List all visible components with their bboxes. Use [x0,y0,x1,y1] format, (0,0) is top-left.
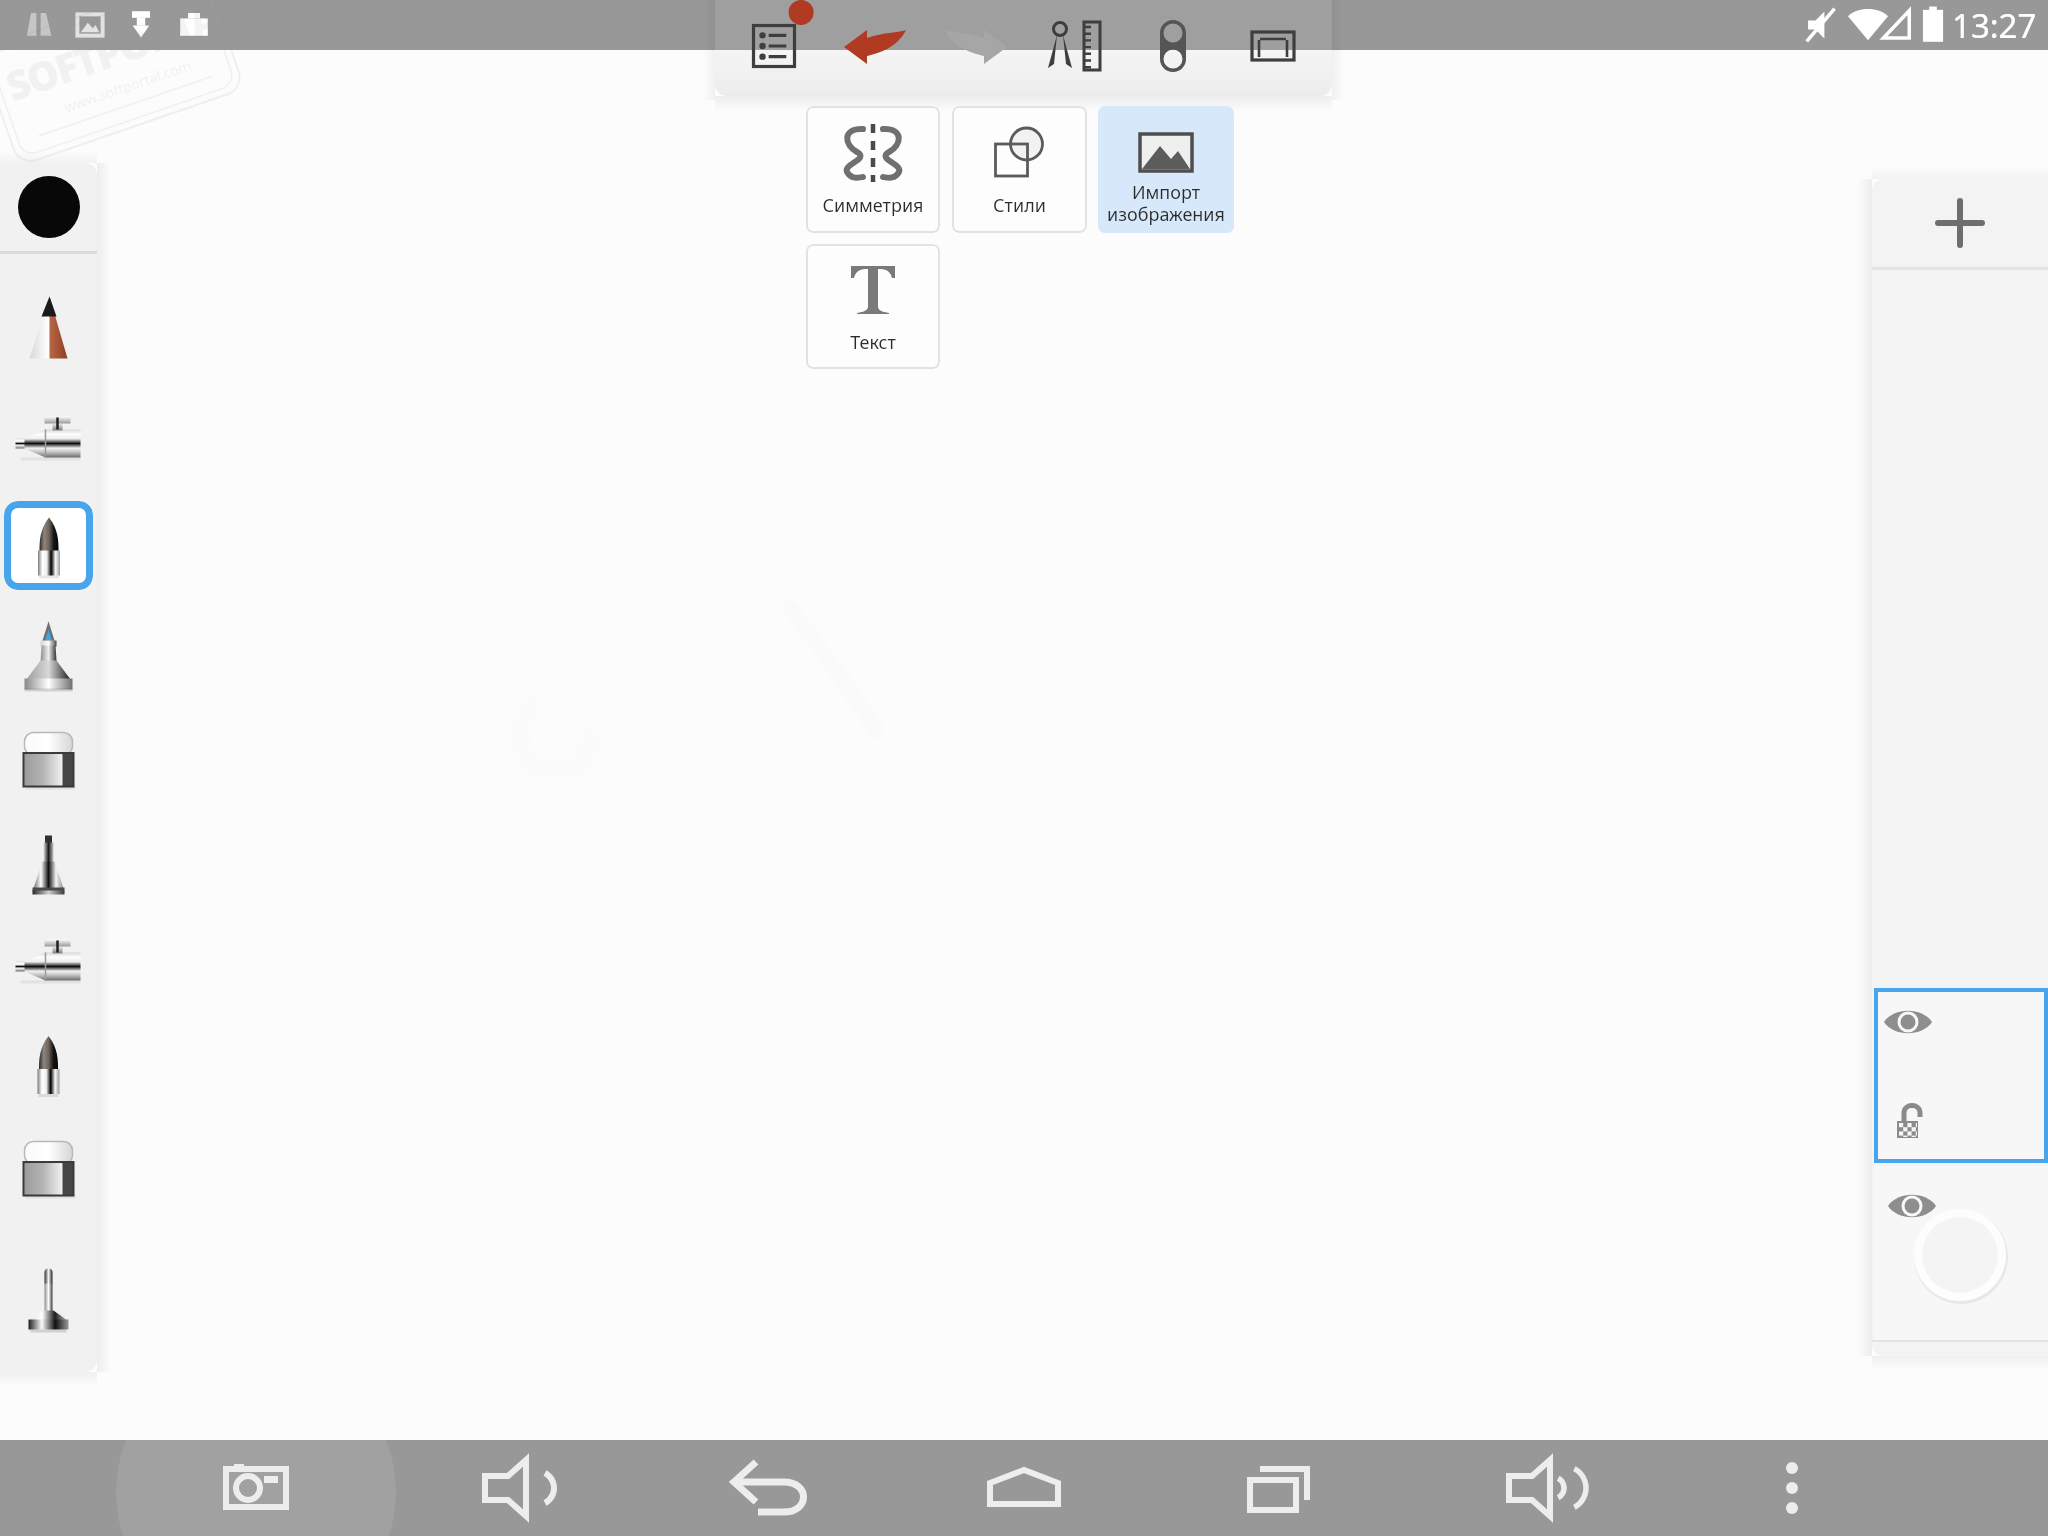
button[interactable]: Volume up [1408,1440,1664,1536]
staticText: www.softportal.com [62,55,194,116]
button[interactable]: Fullscreen [1224,0,1332,96]
button[interactable]: Brush pen tool (selected) [4,501,93,590]
staticText: 13:27 [1952,3,2037,48]
button[interactable]: Layer 2 options [1874,988,2048,1163]
button[interactable]: Block eraser tool [4,1124,93,1213]
button[interactable]: Layer 1 options [1874,1166,2048,1340]
button[interactable]: Pressure toggle [1124,0,1224,96]
staticText: Симметрия [806,193,940,218]
button[interactable]: Pencil tool [4,283,93,372]
staticText: Стили [952,193,1087,218]
button[interactable]: Redo [925,0,1026,96]
button[interactable]: More options [1664,1440,1920,1536]
button[interactable]: Симметрия [806,106,940,233]
button[interactable]: Текст [806,244,940,369]
button[interactable]: Импорт изображения [1098,106,1234,233]
button[interactable]: Current colour [0,163,97,251]
button[interactable]: Стили [952,106,1087,233]
button[interactable]: Blender tool [4,1256,93,1345]
button[interactable]: Add layer [1872,179,2048,267]
button[interactable]: Screenshot [128,1440,384,1536]
button[interactable]: Ink brush tool [4,1021,93,1110]
button[interactable]: Fine pen tool [4,820,93,909]
button[interactable]: Back [640,1440,896,1536]
button[interactable]: Home [896,1440,1152,1536]
button[interactable]: Undo [825,0,925,96]
button[interactable]: Spray tool [4,920,93,1009]
staticText: SOFTPORTAL [0,0,245,112]
button[interactable]: Compass and ruler [1026,0,1124,96]
staticText: Импорт изображения [1098,180,1234,227]
button[interactable]: Menu [715,0,825,96]
button[interactable]: Recent apps [1152,1440,1408,1536]
button[interactable]: Volume down [384,1440,640,1536]
staticText: Текст [806,330,940,355]
button[interactable]: Airbrush tool [4,397,93,486]
button[interactable]: Marker tool [4,614,93,703]
button[interactable]: Eraser tool [4,715,93,804]
